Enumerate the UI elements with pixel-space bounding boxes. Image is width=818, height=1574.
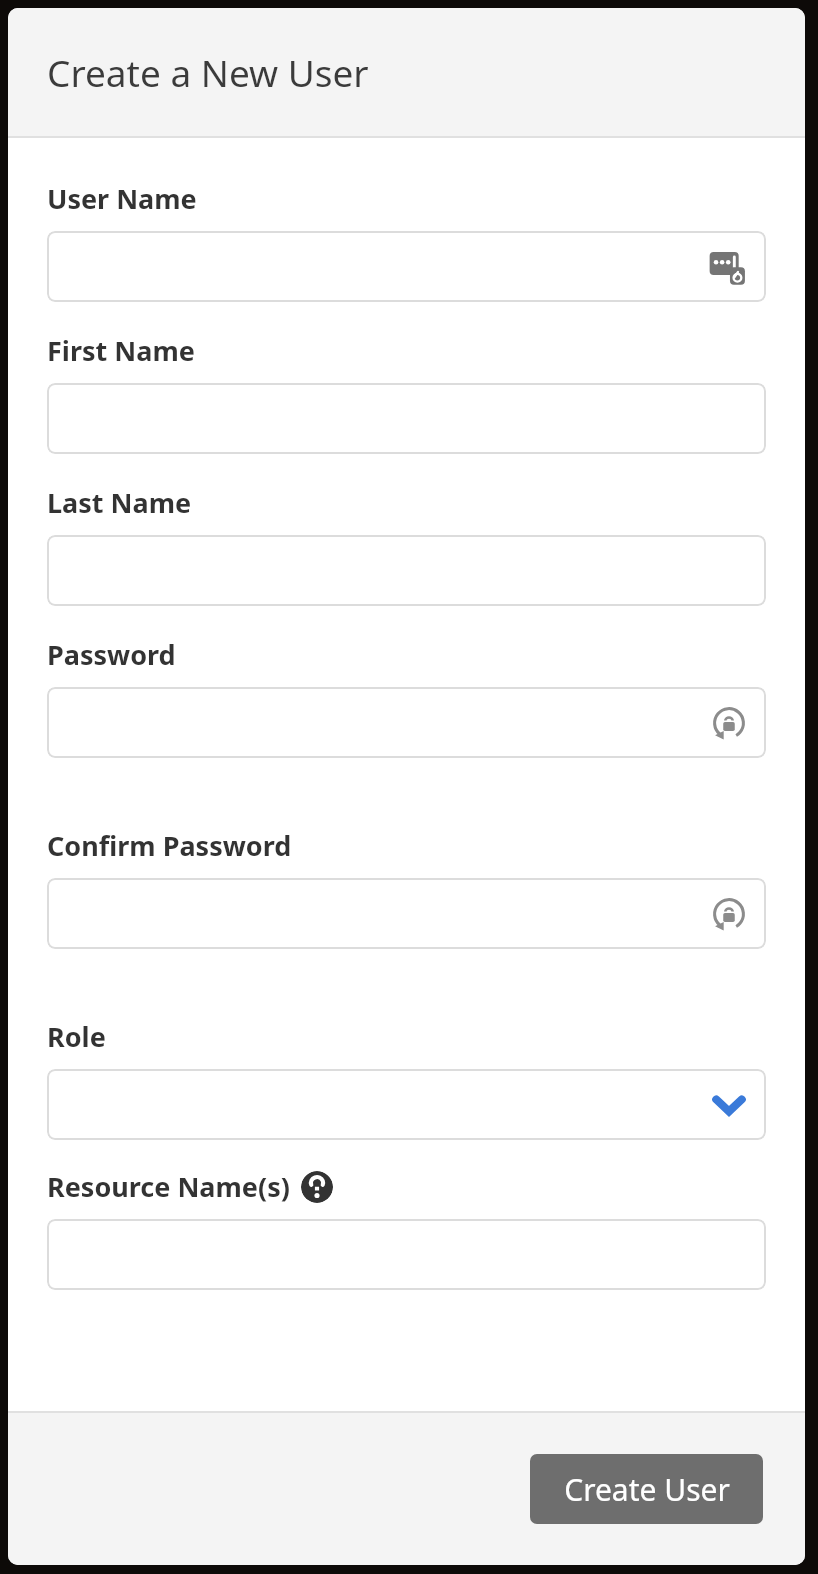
staticText: Resource Name(s) [47,1168,290,1205]
staticText: Last Name [47,484,192,521]
button[interactable]: Generate password [706,891,752,937]
button[interactable]: Select role [47,1069,766,1140]
button[interactable]: Generate password [47,878,766,949]
staticText: Create a New User [47,47,369,97]
staticText: User Name [47,180,197,217]
button[interactable]: Suggest user name [706,244,752,290]
button[interactable] [47,535,766,606]
button[interactable]: Generate password [47,687,766,758]
button[interactable]: Select role [706,1082,752,1128]
button[interactable]: Help about resource names [301,1171,333,1203]
staticText: Create User [564,1469,730,1510]
button[interactable] [47,1219,766,1290]
staticText: Password [47,636,176,673]
button[interactable]: Generate password [706,700,752,746]
button[interactable] [47,383,766,454]
staticText: First Name [47,332,195,369]
button[interactable]: Suggest user name [47,231,766,302]
staticText: Confirm Password [47,827,292,864]
button[interactable]: Create User [530,1454,763,1524]
staticText: Role [47,1018,106,1055]
